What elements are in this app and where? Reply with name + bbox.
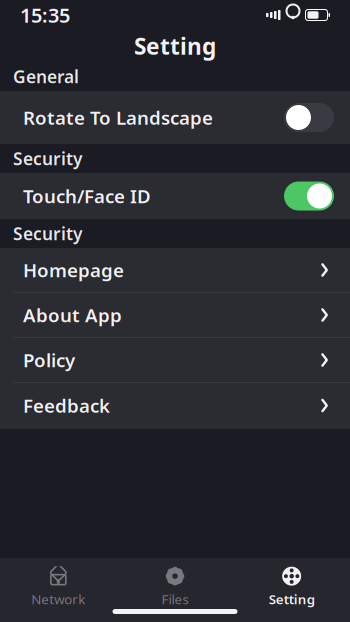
button[interactable]: Network (0, 567, 117, 607)
staticText: Touch/Face ID (23, 184, 151, 208)
button[interactable]: Homepage (0, 248, 350, 293)
button[interactable]: Files (117, 567, 233, 607)
staticText: Security (13, 147, 82, 170)
staticText: Setting (269, 590, 315, 608)
button[interactable]: About App (0, 293, 350, 338)
staticText: Homepage (23, 258, 124, 282)
button[interactable]: Rotate To Landscape (0, 91, 350, 144)
staticText: Files (161, 590, 188, 608)
staticText: About App (23, 303, 122, 327)
button[interactable]: Policy (0, 338, 350, 383)
staticText: Rotate To Landscape (23, 105, 213, 130)
staticText: Security (13, 222, 82, 245)
staticText: 15:35 (20, 2, 70, 28)
button[interactable]: Touch/Face ID (0, 173, 350, 219)
staticText: Feedback (23, 393, 110, 418)
staticText: Policy (23, 348, 75, 372)
staticText: General (13, 65, 79, 88)
button[interactable]: Feedback (0, 383, 350, 429)
staticText: Setting (134, 31, 216, 61)
staticText: Network (31, 590, 85, 608)
button[interactable]: Setting (233, 567, 350, 607)
